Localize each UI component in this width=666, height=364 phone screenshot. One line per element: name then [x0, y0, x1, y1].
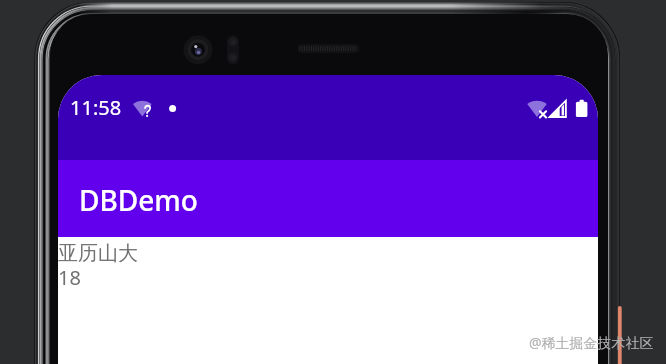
- staticText: 18: [58, 264, 81, 291]
- button[interactable]: 亚历山大: [58, 237, 598, 364]
- staticText: 11:58: [70, 94, 122, 121]
- staticText: 亚历山大: [58, 241, 138, 266]
- staticText: @稀土掘金技术社区: [529, 333, 654, 352]
- button[interactable]: DBDemo: [58, 160, 598, 237]
- staticText: DBDemo: [79, 181, 198, 219]
